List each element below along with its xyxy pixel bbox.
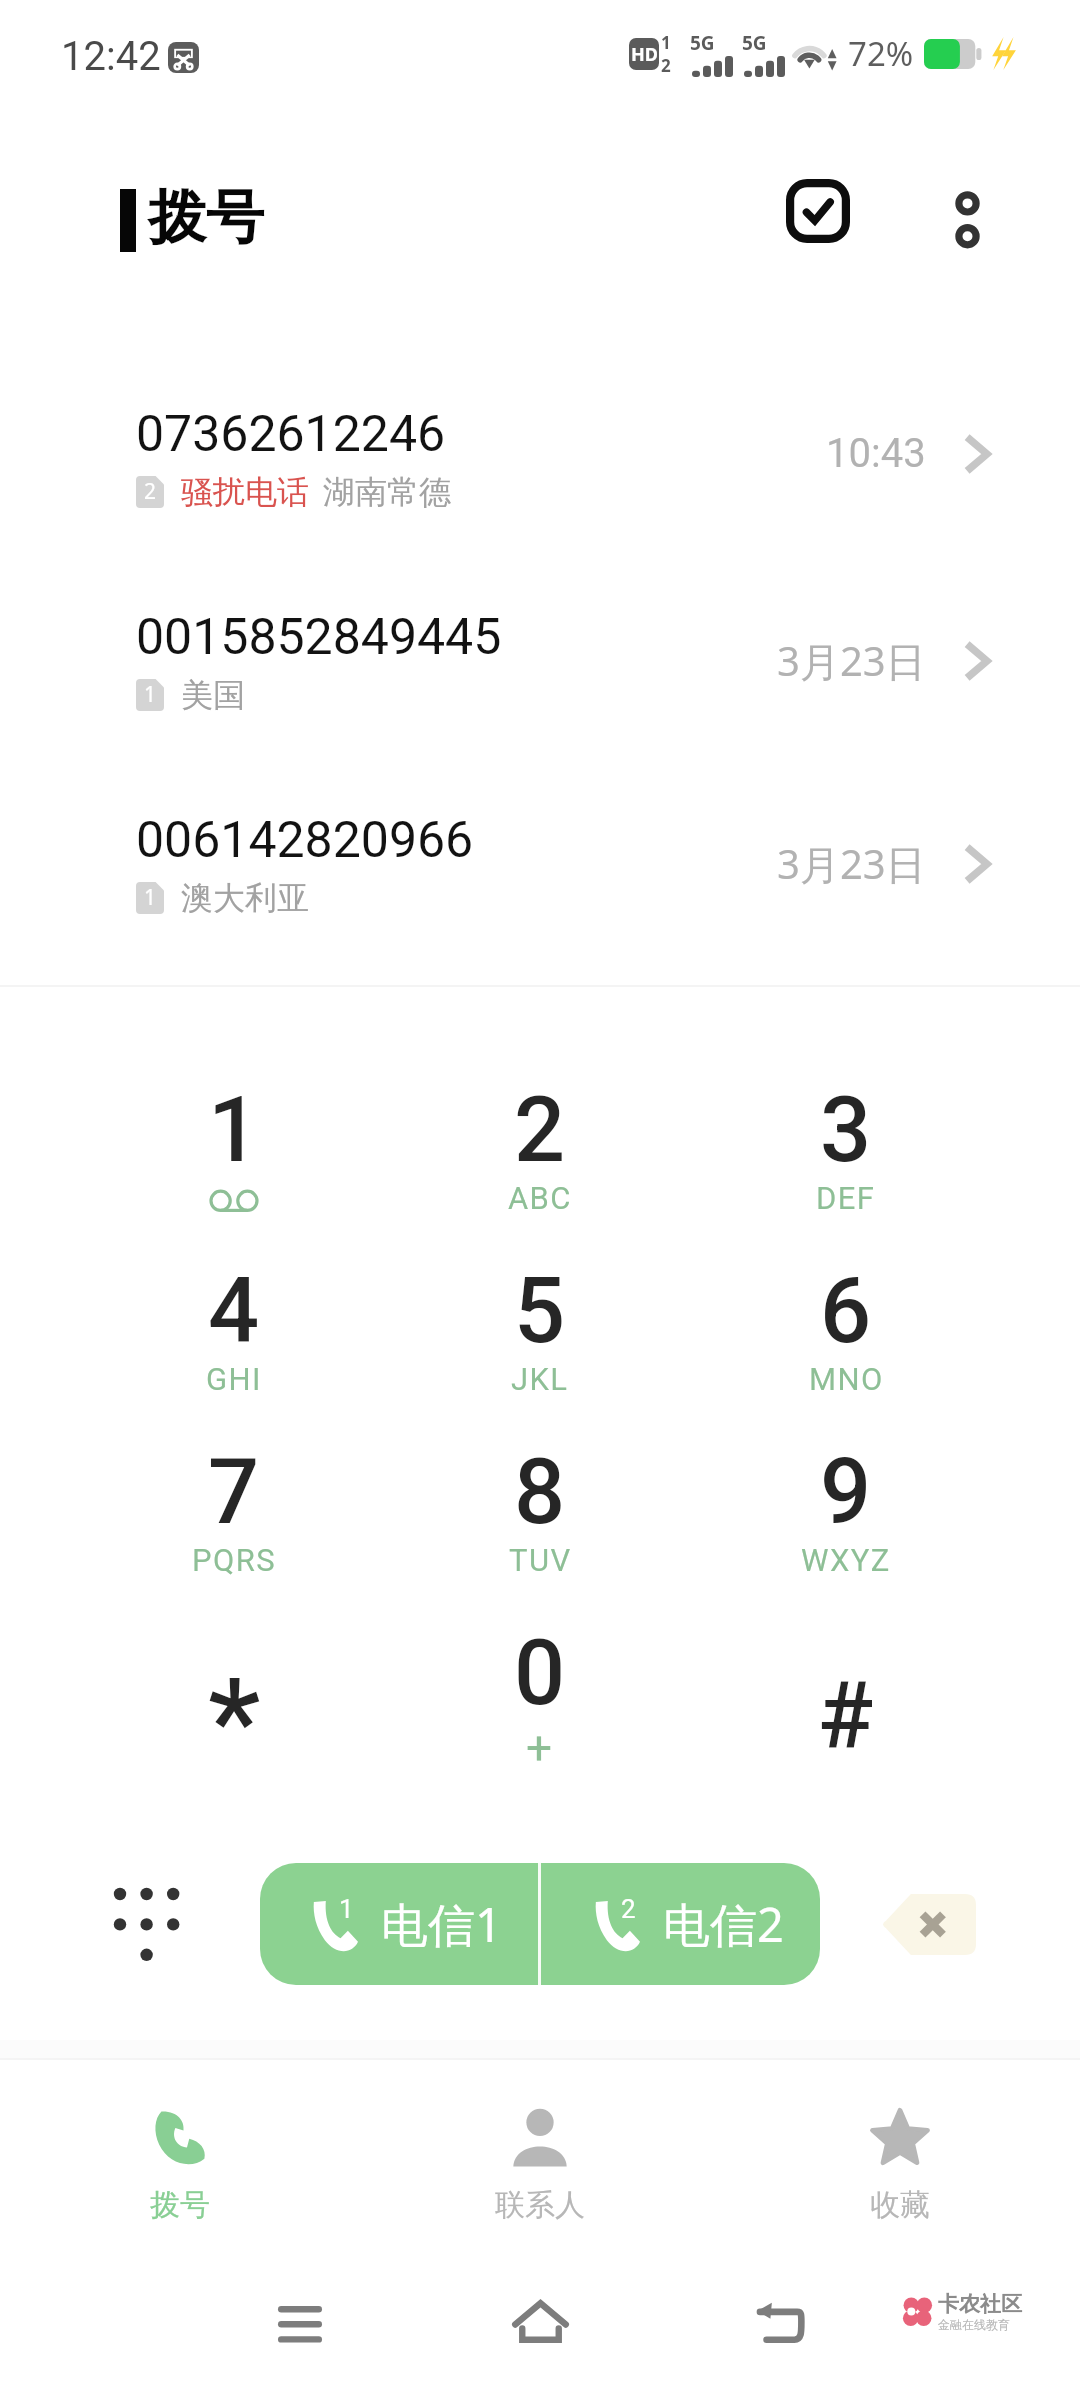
button[interactable]: 3: [693, 1062, 999, 1243]
staticText: 07362612246: [136, 405, 446, 464]
staticText: 骚扰电话: [181, 472, 309, 512]
staticText: 拨号: [150, 2186, 210, 2224]
staticText: +: [526, 1721, 554, 1775]
staticText: 2: [661, 54, 671, 77]
staticText: 3月23日: [777, 633, 926, 688]
staticText: JKL: [511, 1361, 569, 1397]
staticText: 卡农社区: [938, 2291, 1022, 2317]
button[interactable]: 4: [81, 1243, 387, 1424]
staticText: 8: [514, 1440, 566, 1545]
staticText: HD: [631, 42, 658, 67]
staticText: 5G: [742, 30, 767, 56]
button[interactable]: 2: [541, 1863, 820, 1985]
staticText: 1: [208, 1078, 260, 1183]
button[interactable]: *: [81, 1605, 387, 1786]
staticText: *: [208, 1654, 261, 1792]
button[interactable]: 1: [81, 1062, 387, 1243]
staticText: DEF: [816, 1180, 876, 1216]
button[interactable]: 5: [387, 1243, 693, 1424]
staticText: ABC: [508, 1180, 572, 1216]
button[interactable]: More options: [912, 160, 1022, 270]
button[interactable]: Home: [480, 2267, 600, 2387]
staticText: 1: [144, 680, 157, 709]
button[interactable]: 7: [81, 1424, 387, 1605]
button[interactable]: 8: [387, 1424, 693, 1605]
staticText: 收藏: [870, 2186, 930, 2224]
staticText: 0015852849445: [136, 608, 502, 667]
staticText: 3月23日: [777, 836, 926, 891]
button[interactable]: Recents: [240, 2267, 360, 2387]
staticText: #: [818, 1663, 874, 1771]
button[interactable]: 006142820966: [0, 776, 1080, 979]
staticText: 7: [208, 1440, 260, 1545]
staticText: 1: [339, 1894, 354, 1924]
staticText: MNO: [809, 1361, 884, 1397]
button[interactable]: Hide keypad: [73, 1874, 180, 1972]
staticText: 2: [144, 477, 157, 506]
staticText: 澳大利亚: [181, 878, 309, 918]
staticText: 2: [621, 1894, 636, 1924]
button[interactable]: 07362612246: [0, 370, 1080, 573]
staticText: 72%: [848, 31, 914, 76]
staticText: 1: [661, 31, 671, 54]
staticText: GHI: [206, 1361, 262, 1397]
staticText: 12:42: [61, 33, 161, 80]
staticText: 湖南常德: [323, 472, 451, 512]
button[interactable]: Select all: [765, 160, 875, 270]
button[interactable]: Delete: [863, 1874, 996, 1974]
staticText: 006142820966: [136, 811, 474, 870]
button[interactable]: 6: [693, 1243, 999, 1424]
staticText: 3: [820, 1078, 872, 1183]
staticText: 1: [144, 883, 157, 912]
staticText: 9: [820, 1440, 872, 1545]
staticText: 6: [820, 1259, 872, 1364]
staticText: 2: [514, 1078, 566, 1183]
button[interactable]: Back: [720, 2267, 840, 2387]
staticText: 美国: [181, 675, 245, 715]
staticText: WXYZ: [801, 1542, 891, 1578]
staticText: 5: [514, 1259, 566, 1364]
button[interactable]: 联系人: [360, 2060, 720, 2245]
staticText: PQRS: [192, 1542, 276, 1578]
button[interactable]: 1: [260, 1863, 538, 1985]
button[interactable]: 收藏: [720, 2060, 1080, 2245]
staticText: 金融在线教育: [938, 2317, 1010, 2332]
button[interactable]: 拨号: [0, 2060, 360, 2245]
staticText: 5G: [690, 30, 715, 56]
staticText: 4: [208, 1259, 260, 1364]
button[interactable]: 0: [387, 1605, 693, 1786]
staticText: 拨号: [148, 181, 264, 254]
staticText: 电信2: [663, 1892, 784, 1956]
button[interactable]: 2: [387, 1062, 693, 1243]
button[interactable]: 0015852849445: [0, 573, 1080, 776]
staticText: 10:43: [826, 430, 926, 477]
staticText: 电信1: [381, 1892, 502, 1956]
staticText: 0: [514, 1621, 566, 1726]
button[interactable]: 9: [693, 1424, 999, 1605]
button[interactable]: #: [693, 1605, 999, 1786]
staticText: TUV: [509, 1542, 572, 1578]
staticText: 联系人: [495, 2186, 585, 2224]
